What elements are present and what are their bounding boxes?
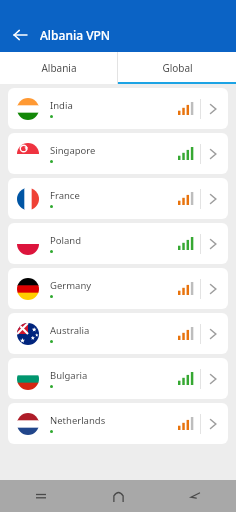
button[interactable]: Bulgaria bbox=[8, 358, 228, 399]
staticText: Global bbox=[162, 61, 193, 75]
button[interactable]: Singapore bbox=[8, 133, 228, 174]
button[interactable]: Albania bbox=[0, 52, 117, 84]
staticText: Albania VPN bbox=[40, 27, 111, 43]
button[interactable]: Back bbox=[9, 24, 31, 46]
staticText: Netherlands bbox=[50, 414, 106, 427]
other: Open bbox=[208, 372, 218, 386]
other: Open bbox=[208, 327, 218, 341]
button[interactable]: Back bbox=[184, 485, 206, 507]
button[interactable]: India bbox=[8, 88, 228, 129]
other: Open bbox=[208, 417, 218, 431]
button[interactable]: France bbox=[8, 178, 228, 219]
staticText: France bbox=[50, 189, 80, 202]
button[interactable]: Recents bbox=[30, 485, 52, 507]
other: Open bbox=[208, 237, 218, 251]
other: Open bbox=[208, 192, 218, 206]
other: Open bbox=[208, 102, 218, 116]
button[interactable]: Netherlands bbox=[8, 403, 228, 444]
button[interactable]: Poland bbox=[8, 223, 228, 264]
button[interactable]: Australia bbox=[8, 313, 228, 354]
staticText: Australia bbox=[50, 324, 90, 337]
staticText: Singapore bbox=[50, 144, 96, 157]
staticText: India bbox=[50, 99, 73, 112]
other: Open bbox=[208, 282, 218, 296]
button[interactable]: Home bbox=[107, 485, 129, 507]
other: Open bbox=[208, 147, 218, 161]
staticText: Albania bbox=[41, 61, 77, 75]
button[interactable]: Global bbox=[118, 52, 236, 84]
button[interactable]: Germany bbox=[8, 268, 228, 309]
staticText: Poland bbox=[50, 234, 81, 247]
staticText: Bulgaria bbox=[50, 369, 88, 382]
staticText: Germany bbox=[50, 279, 92, 292]
